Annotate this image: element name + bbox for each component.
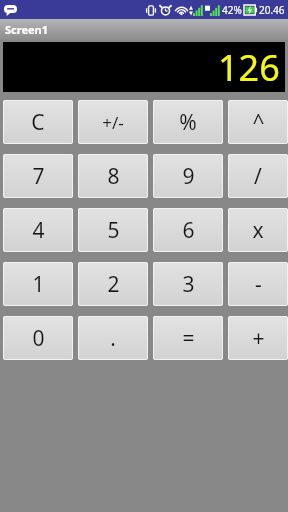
staticText: 42% (222, 3, 242, 17)
button[interactable]: 7 (3, 154, 73, 198)
staticText: 4 (32, 216, 45, 245)
staticText: 6 (182, 216, 195, 245)
button[interactable]: ^ (228, 100, 288, 144)
staticText: = (182, 324, 195, 353)
staticText: 0 (32, 324, 45, 353)
button[interactable]: 0 (3, 316, 73, 360)
staticText: 1 (32, 270, 45, 299)
button[interactable]: 8 (78, 154, 148, 198)
button[interactable]: - (228, 262, 288, 306)
button[interactable]: x (228, 208, 288, 252)
staticText: / (254, 162, 262, 191)
button[interactable]: 6 (153, 208, 223, 252)
staticText: 20.46 (259, 3, 285, 17)
staticText: 5 (107, 216, 120, 245)
staticText: +/- (102, 111, 124, 134)
button[interactable]: 3 (153, 262, 223, 306)
staticText: + (252, 324, 265, 353)
staticText: ^ (252, 108, 265, 137)
button[interactable]: +/- (78, 100, 148, 144)
button[interactable]: 2 (78, 262, 148, 306)
button[interactable]: . (78, 316, 148, 360)
button[interactable]: 5 (78, 208, 148, 252)
staticText: 3 (182, 270, 195, 299)
staticText: 2 (107, 270, 120, 299)
staticText: % (179, 108, 197, 137)
button[interactable]: 1 (3, 262, 73, 306)
button[interactable]: + (228, 316, 288, 360)
staticText: - (255, 270, 262, 299)
staticText: . (110, 324, 116, 353)
staticText: C (31, 108, 45, 137)
button[interactable]: 9 (153, 154, 223, 198)
staticText: 126 (218, 43, 280, 92)
button[interactable]: % (153, 100, 223, 144)
button[interactable]: C (3, 100, 73, 144)
button[interactable]: = (153, 316, 223, 360)
staticText: 7 (32, 162, 45, 191)
button[interactable]: 4 (3, 208, 73, 252)
staticText: Screen1 (5, 22, 49, 37)
staticText: 8 (107, 162, 120, 191)
button[interactable]: / (228, 154, 288, 198)
staticText: 9 (182, 162, 195, 191)
staticText: x (252, 216, 264, 245)
